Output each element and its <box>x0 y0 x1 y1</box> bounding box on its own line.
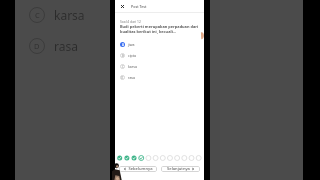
staticText: cipta <box>128 53 136 58</box>
button[interactable]: D <box>115 72 204 83</box>
staticText: Selanjutnya <box>167 166 190 172</box>
button[interactable]: Soal 12 <box>197 155 204 161</box>
staticText: rasa <box>128 75 135 80</box>
button[interactable]: Soal 2 <box>123 155 131 161</box>
button[interactable]: Soal 1 <box>115 155 123 161</box>
staticText: A <box>122 43 124 47</box>
button[interactable]: Soal 8 <box>169 155 176 161</box>
button[interactable]: Soal 9 <box>176 155 183 161</box>
button[interactable]: Sebelumnya <box>119 166 157 172</box>
button[interactable]: C <box>115 61 204 72</box>
staticText: Soal 4 dari 12 <box>120 19 141 23</box>
button[interactable]: A <box>115 39 204 50</box>
button[interactable]: Soal 4 <box>139 155 147 161</box>
button[interactable]: Soal 3 <box>131 155 139 161</box>
staticText: B <box>122 54 124 58</box>
staticText: Sebelumnya <box>128 166 153 172</box>
button[interactable]: Soal 6 <box>155 155 162 161</box>
button[interactable]: Selanjutnya <box>161 166 200 172</box>
button[interactable]: Soal 5 <box>147 155 155 161</box>
button[interactable]: Close <box>119 3 125 9</box>
staticText: C <box>35 10 40 20</box>
staticText: Budi pekerti merupakan perpaduan dari ku… <box>120 24 201 34</box>
button[interactable]: Soal 7 <box>162 155 169 161</box>
staticText: karsa <box>128 64 137 69</box>
staticText: Post Test <box>131 4 147 9</box>
staticText: D <box>34 41 40 51</box>
staticText: karsa <box>54 7 85 23</box>
staticText: rasa <box>54 38 78 54</box>
staticText: C <box>122 65 124 69</box>
button[interactable]: B <box>115 50 204 61</box>
staticText: D <box>121 76 124 80</box>
staticText: jiwa <box>128 42 135 47</box>
button[interactable]: Soal 11 <box>190 155 197 161</box>
button[interactable]: Soal 10 <box>183 155 190 161</box>
